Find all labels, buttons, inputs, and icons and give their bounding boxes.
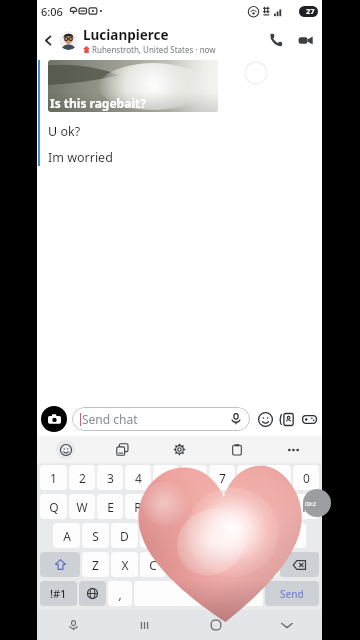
staticText: V: [177, 557, 185, 573]
button[interactable]: A: [53, 523, 80, 548]
staticText: T: [163, 499, 170, 515]
button[interactable]: Language: [79, 581, 106, 606]
button[interactable]: 2: [69, 465, 95, 490]
button[interactable]: H: [196, 523, 222, 548]
button[interactable]: Voice input: [37, 610, 109, 640]
staticText: ,: [118, 586, 122, 602]
button[interactable]: C: [140, 552, 166, 577]
button[interactable]: W: [69, 494, 95, 519]
button[interactable]: S: [82, 523, 109, 548]
staticText: P: [302, 499, 310, 515]
staticText: Send: [280, 587, 304, 601]
button[interactable]: .: [239, 581, 263, 606]
button[interactable]: Stickers: [254, 408, 276, 430]
staticText: .: [249, 586, 253, 602]
staticText: Y: [191, 499, 198, 515]
button[interactable]: Backspace: [280, 552, 319, 577]
button[interactable]: Back: [37, 22, 59, 58]
button[interactable]: 8: [237, 465, 263, 490]
button[interactable]: Keyboard settings: [151, 436, 208, 463]
button[interactable]: 5: [153, 465, 179, 490]
staticText: 27: [306, 6, 315, 16]
button[interactable]: Video call: [290, 22, 320, 58]
button[interactable]: Voice call: [262, 22, 290, 58]
button[interactable]: Home: [180, 610, 251, 640]
button[interactable]: Y: [181, 494, 207, 519]
button[interactable]: 9: [265, 465, 291, 490]
button[interactable]: Z: [82, 552, 109, 577]
button[interactable]: Translate: [94, 436, 151, 463]
staticText: 6:06: [41, 4, 63, 19]
button[interactable]: Recent apps: [109, 610, 180, 640]
button[interactable]: X: [111, 552, 138, 577]
staticText: M: [260, 557, 271, 573]
button[interactable]: F: [140, 523, 166, 548]
button[interactable]: Q: [40, 494, 67, 519]
button[interactable]: D: [111, 523, 138, 548]
button[interactable]: L: [280, 523, 306, 548]
staticText: X: [121, 557, 129, 573]
button[interactable]: ,: [108, 581, 132, 606]
button[interactable]: Im worried: [48, 149, 113, 166]
staticText: Lucianpierce: [83, 26, 169, 44]
button[interactable]: N: [224, 552, 250, 577]
staticText: 3: [107, 470, 114, 486]
staticText: N: [232, 557, 242, 573]
button[interactable]: Lucianpierce: [83, 26, 262, 55]
staticText: 1: [50, 470, 57, 486]
staticText: 7: [219, 470, 226, 486]
button[interactable]: I: [237, 494, 263, 519]
button[interactable]: 0: [293, 465, 319, 490]
button[interactable]: J: [224, 523, 250, 548]
staticText: K: [261, 528, 269, 544]
button[interactable]: B: [196, 552, 222, 577]
staticText: !#1: [50, 586, 67, 601]
button[interactable]: [134, 581, 237, 606]
button[interactable]: T: [153, 494, 179, 519]
button[interactable]: G: [168, 523, 194, 548]
button[interactable]: 7: [209, 465, 235, 490]
button[interactable]: Send: [265, 581, 319, 606]
button[interactable]: Profile: [59, 31, 78, 50]
button[interactable]: K: [252, 523, 278, 548]
button[interactable]: Clipboard: [208, 436, 265, 463]
button[interactable]: More options: [265, 436, 322, 463]
button[interactable]: Open camera: [41, 406, 67, 432]
button[interactable]: Cameos: [276, 408, 298, 430]
button[interactable]: !#1: [40, 581, 77, 606]
button[interactable]: Emoji: [37, 436, 94, 463]
staticText: 5: [163, 470, 170, 486]
staticText: R: [134, 499, 142, 515]
staticText: H: [205, 528, 214, 544]
button[interactable]: Games: [298, 408, 320, 430]
staticText: G: [177, 528, 186, 544]
staticText: E: [107, 499, 114, 515]
button[interactable]: Is this ragebait?: [48, 60, 218, 112]
button[interactable]: O: [265, 494, 291, 519]
button[interactable]: R: [125, 494, 151, 519]
button[interactable]: P: [293, 494, 319, 519]
button[interactable]: E: [97, 494, 123, 519]
button[interactable]: Voice note: [226, 409, 246, 429]
staticText: A: [63, 528, 71, 544]
button[interactable]: U ok?: [48, 123, 81, 140]
button[interactable]: Send chat: [72, 407, 250, 431]
button[interactable]: 1: [40, 465, 67, 490]
button[interactable]: 4: [125, 465, 151, 490]
staticText: J: [235, 528, 239, 544]
button[interactable]: 3: [97, 465, 123, 490]
button[interactable]: Hide keyboard: [251, 610, 322, 640]
staticText: I: [248, 499, 253, 515]
button[interactable]: V: [168, 552, 194, 577]
button[interactable]: Shift: [40, 552, 80, 577]
staticText: 00:2: [305, 500, 316, 507]
staticText: Z: [92, 557, 99, 573]
button[interactable]: U: [209, 494, 235, 519]
staticText: L: [290, 528, 297, 544]
button[interactable]: 6: [181, 465, 207, 490]
button[interactable]: M: [252, 552, 278, 577]
